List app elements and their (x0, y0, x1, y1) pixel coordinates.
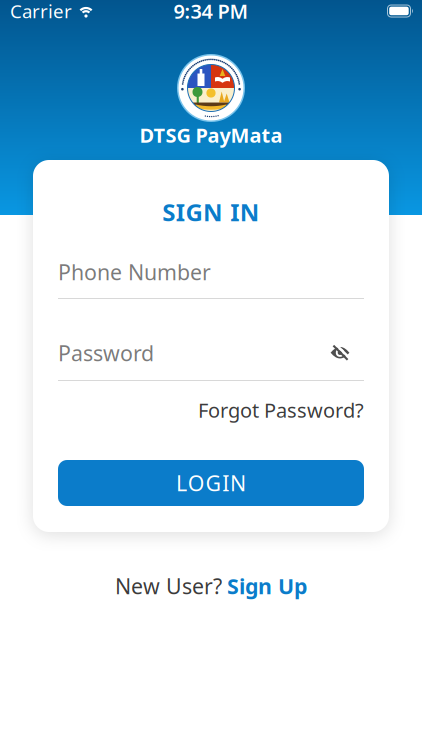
staticText: Carrier (10, 0, 72, 23)
staticText: Phone Number (58, 258, 211, 286)
button[interactable]: LOGIN (58, 460, 364, 506)
button[interactable]: Password (58, 341, 364, 381)
staticText: 9:34 PM (173, 0, 248, 24)
button[interactable]: Sign Up (227, 572, 307, 600)
staticText: Password (58, 339, 154, 367)
staticText: SIGN IN (162, 196, 260, 228)
staticText: New User? (115, 572, 222, 600)
staticText: DTSG PayMata (139, 122, 282, 148)
button[interactable]: Phone Number (58, 260, 364, 299)
button[interactable]: Forgot Password? (198, 398, 364, 422)
staticText: Forgot Password? (198, 397, 364, 423)
staticText: Sign Up (227, 572, 307, 600)
staticText: LOGIN (176, 469, 246, 497)
